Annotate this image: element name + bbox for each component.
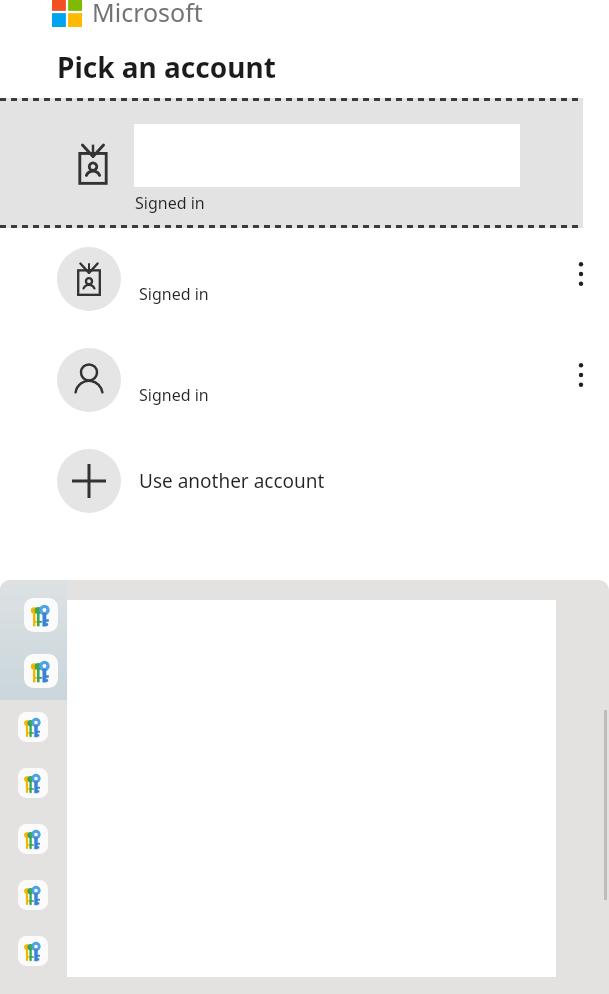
staticText: Use another account: [139, 468, 325, 494]
button[interactable]: Signed in: [0, 329, 609, 430]
staticText: Signed in: [135, 192, 205, 214]
button[interactable]: Signed in: [0, 228, 609, 329]
button[interactable]: Password suggestion: [18, 824, 48, 854]
button[interactable]: Password suggestion: [18, 712, 48, 742]
button[interactable]: Password suggestion: [24, 654, 58, 688]
staticText: Microsoft: [92, 0, 203, 29]
button[interactable]: More options: [553, 228, 609, 329]
staticText: Signed in: [139, 384, 209, 406]
button[interactable]: Use another account: [0, 430, 609, 531]
button[interactable]: Password suggestion: [18, 880, 48, 910]
staticText: Signed in: [139, 283, 209, 305]
button[interactable]: Password suggestion: [18, 768, 48, 798]
button[interactable]: More options: [553, 329, 609, 430]
button[interactable]: Password suggestion: [18, 936, 48, 966]
button[interactable]: Password suggestion: [24, 598, 58, 632]
button[interactable]: Signed in: [0, 98, 609, 228]
staticText: Pick an account: [57, 48, 276, 86]
